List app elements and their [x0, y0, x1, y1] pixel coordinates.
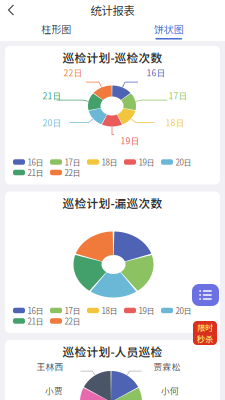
staticText: 统计报表 — [90, 2, 134, 18]
staticText: 贾霖松 — [153, 360, 180, 373]
staticText: 22日 — [63, 66, 82, 79]
staticText: 21日 — [42, 89, 61, 102]
staticText: 16日 — [27, 156, 43, 168]
staticText: 19日 — [138, 156, 154, 168]
button[interactable]: 柱形图 — [0, 20, 112, 41]
staticText: 20日 — [175, 156, 191, 168]
button[interactable]: 返回 — [0, 0, 24, 20]
staticText: 17日 — [168, 89, 187, 102]
button[interactable]: 列表筛选 — [192, 284, 219, 306]
staticText: 限时 — [197, 321, 213, 333]
staticText: 20日 — [42, 116, 61, 129]
button[interactable]: 饼状图 — [112, 20, 225, 41]
staticText: 18日 — [101, 305, 117, 316]
staticText: 巡检计划-漏巡次数 — [62, 194, 162, 211]
staticText: 21日 — [27, 167, 43, 178]
staticText: 17日 — [64, 156, 80, 168]
button[interactable]: 限时活动 — [193, 321, 217, 345]
staticText: 小何 — [161, 384, 179, 397]
staticText: 巡检计划-人员巡检 — [62, 343, 162, 360]
staticText: 18日 — [101, 156, 117, 168]
staticText: 16日 — [27, 305, 43, 316]
staticText: 18日 — [165, 116, 184, 129]
staticText: 小贾 — [45, 384, 63, 397]
staticText: 19日 — [120, 134, 139, 147]
staticText: 16日 — [146, 66, 165, 79]
staticText: 20日 — [175, 305, 191, 316]
staticText: 柱形图 — [41, 22, 71, 36]
staticText: 饼状图 — [154, 22, 184, 36]
staticText: 17日 — [64, 305, 80, 316]
staticText: 22日 — [64, 167, 80, 178]
staticText: 巡检计划-巡检次数 — [62, 49, 162, 66]
staticText: 秒杀 — [197, 333, 213, 345]
staticText: 21日 — [27, 315, 43, 327]
staticText: 22日 — [64, 315, 80, 327]
staticText: 19日 — [138, 305, 154, 316]
staticText: 王林西 — [36, 360, 63, 373]
